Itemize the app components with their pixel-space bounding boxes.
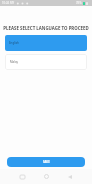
staticText: 78%	[76, 1, 82, 5]
staticText: SAVE	[43, 160, 50, 164]
staticText: English	[9, 41, 19, 45]
staticText: Malay	[10, 60, 19, 64]
button[interactable]: Back	[62, 169, 78, 184]
button[interactable]: English	[5, 35, 87, 51]
button[interactable]: Home	[38, 169, 54, 184]
button[interactable]: Recent apps	[14, 169, 30, 184]
button[interactable]: SAVE	[7, 157, 85, 167]
staticText: PLEASE SELECT LANGUAGE TO PROCEED	[0, 25, 92, 31]
staticText: 10:24 MY	[2, 1, 14, 5]
button[interactable]: Malay	[5, 54, 87, 70]
